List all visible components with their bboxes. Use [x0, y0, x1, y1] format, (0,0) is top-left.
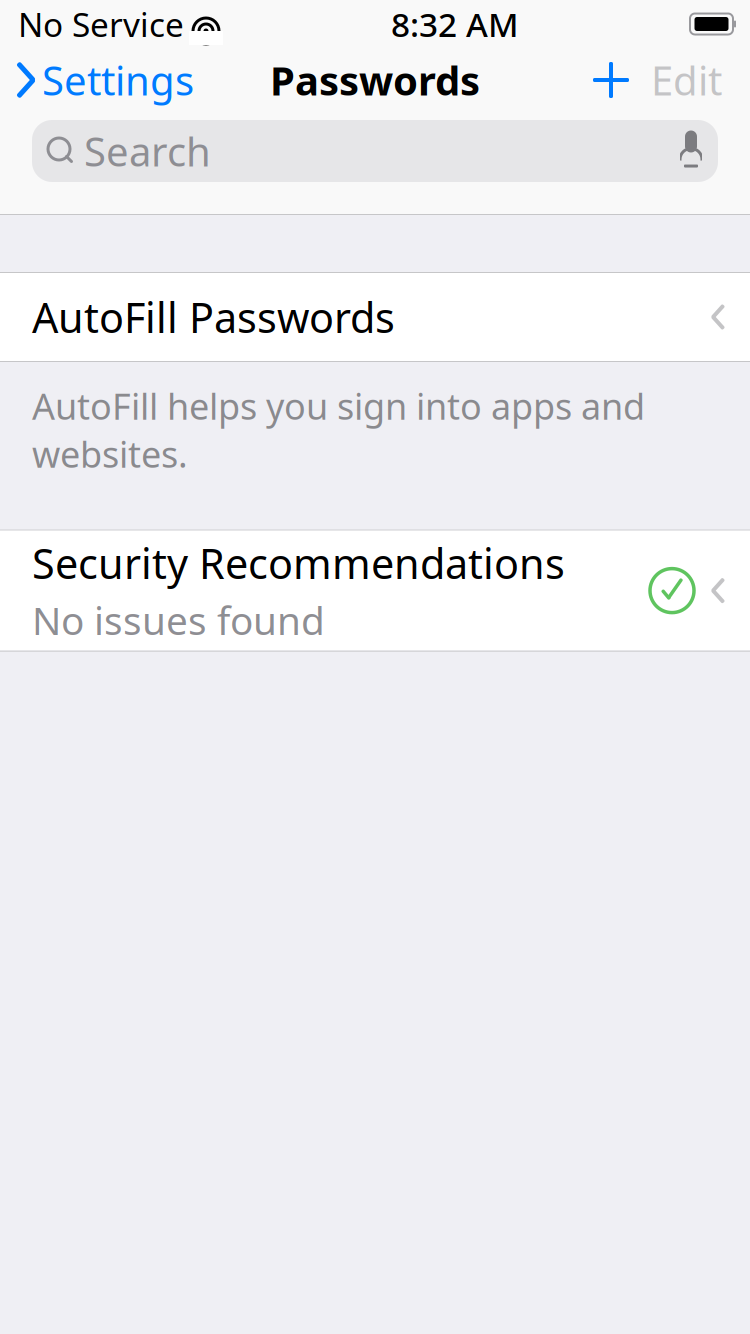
staticText: Settings	[42, 53, 194, 106]
staticText: 8:32 AM	[391, 2, 519, 46]
staticText: AutoFill Passwords	[32, 290, 395, 344]
staticText: Security Recommendations	[32, 535, 565, 590]
button[interactable]: AutoFill Passwords	[0, 273, 750, 361]
button[interactable]: Settings	[0, 47, 194, 112]
staticText: No Service	[18, 2, 184, 46]
staticText: Search	[84, 124, 211, 177]
button[interactable]: Security Recommendations	[0, 531, 750, 651]
staticText: AutoFill helps you sign into apps and we…	[32, 382, 645, 478]
staticText: Passwords	[270, 53, 480, 106]
button[interactable]: Search	[32, 120, 718, 182]
button[interactable]: Add Password	[585, 60, 637, 100]
staticText: No issues found	[32, 594, 325, 646]
button[interactable]: Edit	[637, 47, 736, 112]
staticText: Edit	[651, 53, 722, 106]
